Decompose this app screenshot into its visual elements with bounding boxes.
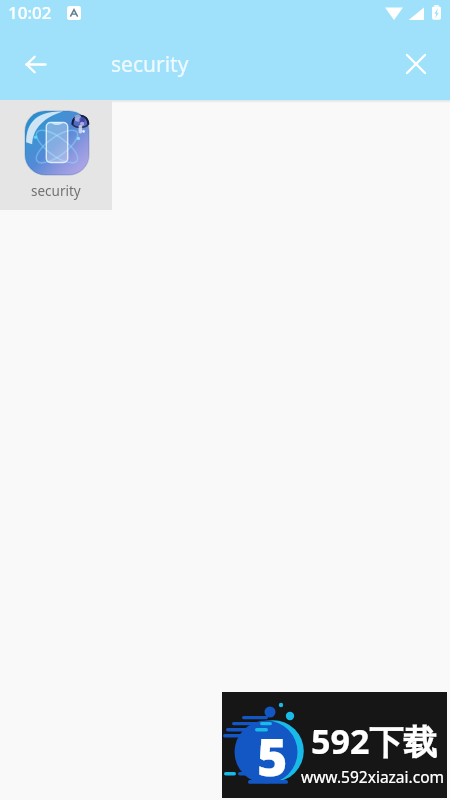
- staticText: 592下载: [311, 718, 438, 764]
- staticText: www.592xiazai.com: [301, 766, 445, 787]
- button[interactable]: Clear: [399, 47, 433, 81]
- staticText: 5: [257, 720, 288, 791]
- staticText: 10:02: [8, 1, 52, 24]
- button[interactable]: security: [0, 100, 112, 210]
- button[interactable]: Back: [18, 47, 52, 81]
- staticText: security: [111, 50, 189, 79]
- staticText: security: [31, 182, 81, 200]
